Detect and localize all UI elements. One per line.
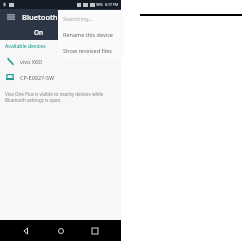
staticText: vivo X6D [20, 58, 43, 65]
button[interactable]: On [0, 24, 121, 40]
staticText: 98% [96, 2, 103, 7]
staticText: Bluetooth [22, 12, 58, 22]
staticText: Show received files [63, 47, 112, 54]
staticText: On [34, 28, 44, 37]
button[interactable]: Back [17, 222, 35, 240]
staticText: 8:17 PM [105, 2, 119, 7]
button[interactable]: Recent apps [86, 222, 104, 240]
staticText: Available devices [5, 43, 46, 50]
button[interactable]: Rename this device [58, 26, 124, 42]
button[interactable]: Home [52, 222, 70, 240]
button[interactable]: CP-E0027-SW [0, 71, 121, 83]
staticText: CP-E0027-SW [20, 74, 55, 81]
staticText: Vivo One Plus is visible to nearby devic… [5, 91, 104, 103]
button[interactable]: Open navigation drawer [5, 11, 17, 23]
button: Searching... [58, 10, 124, 26]
button[interactable]: Show received files [58, 42, 124, 58]
staticText: Searching... [63, 15, 94, 22]
button[interactable]: vivo X6D [0, 55, 121, 67]
staticText: Rename this device [63, 31, 113, 38]
